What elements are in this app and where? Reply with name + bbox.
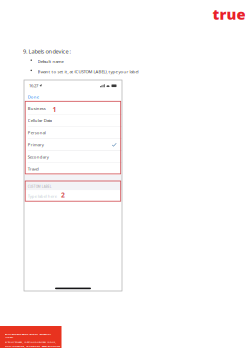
staticText: 16:27 xyxy=(29,83,38,88)
staticText: Travel xyxy=(28,166,39,172)
staticText: CUSTOM LABEL xyxy=(28,184,52,189)
button[interactable]: Cellular Data xyxy=(24,115,122,126)
staticText: 1 xyxy=(52,105,56,114)
staticText: HUAI KHWANG, BANGKOK 10310 THAILAND xyxy=(5,344,61,348)
staticText: Done xyxy=(28,94,39,100)
button[interactable]: Personal xyxy=(24,127,122,138)
button[interactable]: Done xyxy=(24,92,42,102)
staticText: Personal xyxy=(28,130,46,135)
staticText: Business xyxy=(28,105,46,111)
staticText: Labels on device : xyxy=(28,47,71,55)
staticText: 18 TRUE TOWER, RATCHADAPHISEK ROAD, xyxy=(5,340,57,343)
staticText: Secondary xyxy=(28,154,49,160)
staticText: Cellular Data xyxy=(28,118,52,123)
staticText: 9. xyxy=(23,47,28,55)
staticText: If want to set it, at (CUSTOM LABEL), ty… xyxy=(37,69,138,74)
staticText: TRUE CORPORATION PUBLIC COMPANY LIMITED xyxy=(5,332,52,339)
staticText: 2 xyxy=(61,190,65,199)
staticText: Default name xyxy=(37,58,63,64)
staticText: Type label here xyxy=(28,193,57,199)
staticText: true xyxy=(212,4,245,24)
button[interactable]: Primary xyxy=(24,139,122,151)
button[interactable]: Type label here xyxy=(24,190,122,202)
staticText: Primary xyxy=(28,142,44,147)
button[interactable]: Business xyxy=(24,102,122,114)
button[interactable]: Travel xyxy=(24,163,122,175)
button[interactable]: Secondary xyxy=(24,151,122,163)
